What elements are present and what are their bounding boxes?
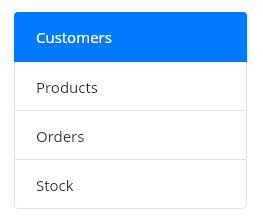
button[interactable]: Orders xyxy=(14,111,247,159)
button[interactable]: Products xyxy=(14,62,247,110)
staticText: Orders xyxy=(36,126,85,146)
staticText: Stock xyxy=(36,175,74,195)
staticText: Products xyxy=(36,77,98,97)
staticText: Customers xyxy=(36,27,112,47)
button[interactable]: Stock xyxy=(14,160,247,208)
button[interactable]: Customers xyxy=(14,12,247,62)
